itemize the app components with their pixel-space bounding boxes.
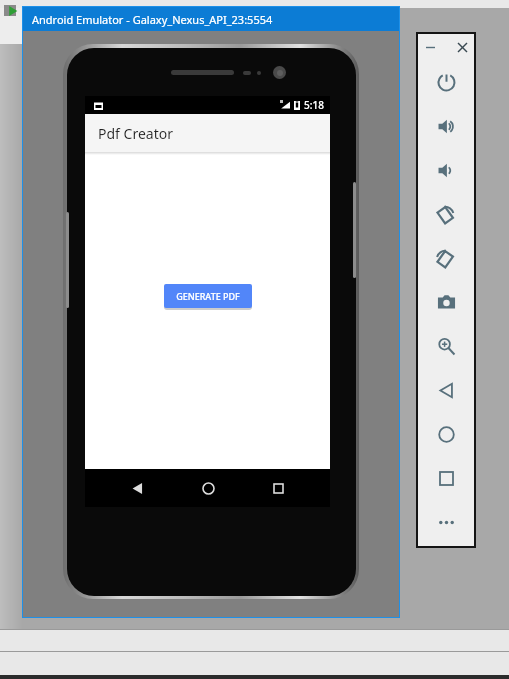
- button[interactable]: Overview: [418, 456, 474, 500]
- button[interactable]: GENERATE PDF: [164, 284, 252, 308]
- button[interactable]: Close: [452, 37, 472, 57]
- staticText: GENERATE PDF: [176, 290, 240, 302]
- button[interactable]: Zoom: [418, 324, 474, 368]
- button[interactable]: Rotate right: [418, 236, 474, 280]
- button[interactable]: Volume down: [418, 148, 474, 192]
- button[interactable]: Power: [418, 60, 474, 104]
- button[interactable]: Back: [418, 368, 474, 412]
- button[interactable]: More: [418, 500, 474, 544]
- staticText: Pdf Creator: [98, 124, 173, 143]
- button[interactable]: Back: [118, 469, 156, 507]
- button[interactable]: Home: [418, 412, 474, 456]
- staticText: 5:18: [304, 98, 324, 112]
- button[interactable]: Minimize: [420, 37, 440, 57]
- button[interactable]: Take screenshot: [418, 280, 474, 324]
- staticText: Android Emulator - Galaxy_Nexus_API_23:5…: [32, 12, 273, 27]
- button[interactable]: Home: [189, 469, 227, 507]
- button[interactable]: Rotate left: [418, 192, 474, 236]
- button[interactable]: Recent apps: [259, 469, 297, 507]
- button[interactable]: Volume up: [418, 104, 474, 148]
